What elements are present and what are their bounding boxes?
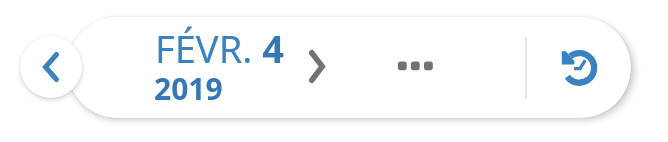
staticText: FÉVR. 4 — [155, 22, 285, 74]
button[interactable]: FÉVR. 4 — [150, 26, 300, 106]
button[interactable]: Next day — [294, 44, 340, 89]
button[interactable]: History — [555, 43, 603, 91]
staticText: 2019 — [154, 68, 223, 109]
button[interactable]: More options — [386, 42, 444, 90]
button[interactable]: Previous day — [20, 36, 82, 98]
